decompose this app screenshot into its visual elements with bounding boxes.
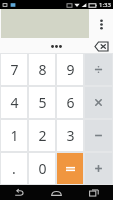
button[interactable]: Multiply <box>85 87 112 118</box>
staticText: 1 <box>10 126 19 145</box>
button[interactable]: 9 <box>57 54 83 85</box>
button[interactable]: 8 <box>29 54 55 85</box>
staticText: 2 <box>38 126 47 145</box>
staticText: 9 <box>66 60 75 79</box>
staticText: 1:33 <box>99 1 111 9</box>
button[interactable]: 5 <box>29 87 55 118</box>
button[interactable]: Back <box>0 185 37 200</box>
staticText: 3 <box>66 126 75 145</box>
staticText: 8 <box>38 60 47 79</box>
staticText: 7 <box>10 60 19 79</box>
staticText: . <box>12 159 16 178</box>
button[interactable]: 2 <box>29 120 55 151</box>
button[interactable] <box>57 153 83 184</box>
button[interactable]: Add <box>85 153 112 184</box>
button[interactable]: 6 <box>57 87 83 118</box>
button[interactable]: 1 <box>1 120 27 151</box>
button[interactable]: Backspace <box>89 39 113 53</box>
button[interactable]: Home <box>37 185 75 200</box>
staticText: 5 <box>38 93 47 112</box>
button[interactable]: Subtract <box>85 120 112 151</box>
button[interactable]: Recent apps <box>75 185 113 200</box>
button[interactable]: . <box>1 153 27 184</box>
button[interactable]: 3 <box>57 120 83 151</box>
button[interactable]: More options <box>89 9 113 39</box>
button[interactable]: Divide <box>85 54 112 85</box>
staticText: 0 <box>38 159 47 178</box>
button[interactable]: 7 <box>1 54 27 85</box>
staticText: 4 <box>10 93 19 112</box>
button[interactable]: 4 <box>1 87 27 118</box>
staticText: 6 <box>66 93 75 112</box>
button[interactable]: 0 <box>29 153 55 184</box>
